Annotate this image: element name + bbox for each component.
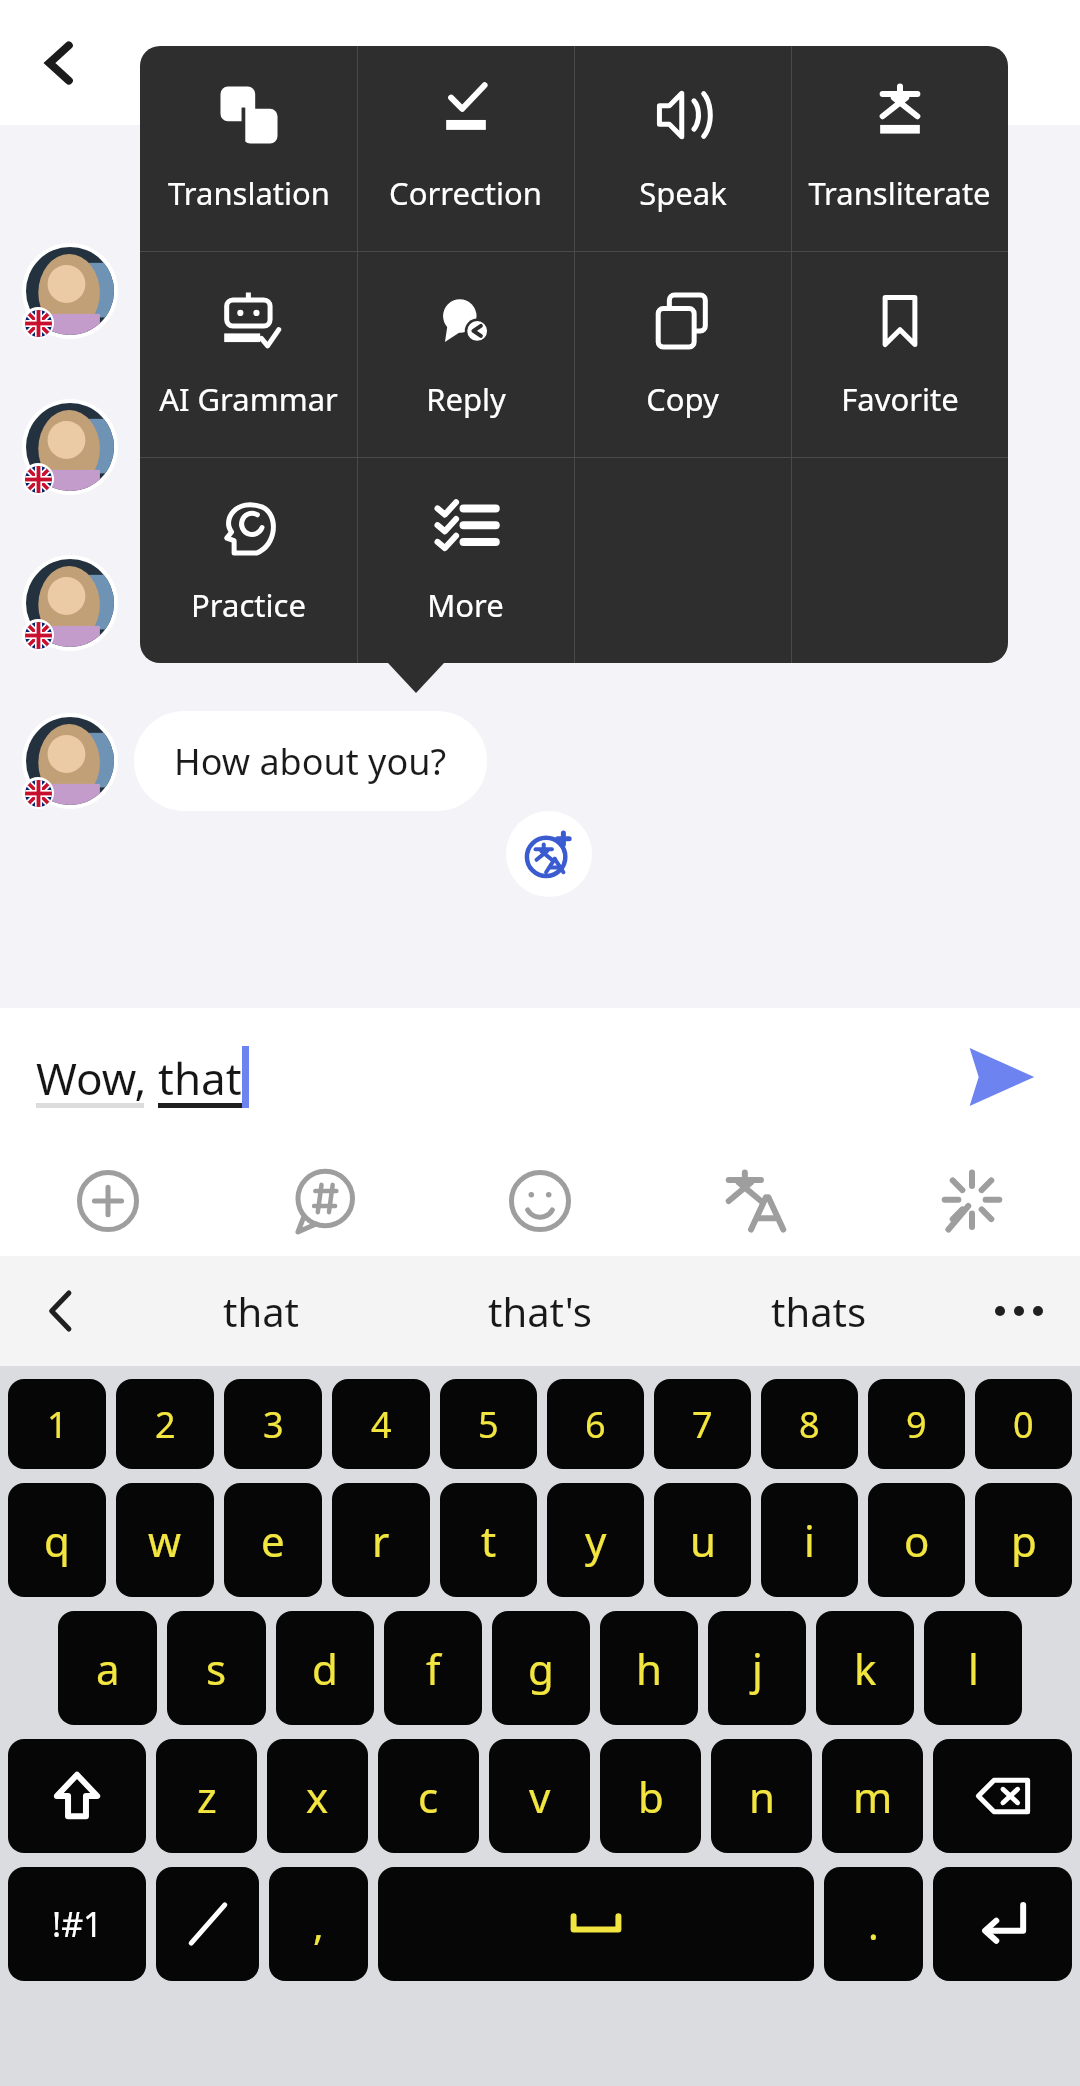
button[interactable]: Reply xyxy=(357,252,574,457)
staticText: 6 xyxy=(585,1400,606,1449)
button[interactable]: Topics xyxy=(216,1146,432,1256)
button[interactable]: Space xyxy=(378,1867,814,1981)
button[interactable]: 3 xyxy=(224,1379,322,1469)
staticText: g xyxy=(528,1640,554,1697)
button[interactable]: 7 xyxy=(654,1379,751,1469)
button[interactable]: r xyxy=(332,1483,430,1597)
button[interactable]: g xyxy=(492,1611,590,1725)
button[interactable]: d xyxy=(276,1611,374,1725)
button[interactable]: z xyxy=(156,1739,257,1853)
button[interactable]: Send xyxy=(920,1008,1080,1146)
staticText: 4 xyxy=(371,1400,392,1449)
staticText: How about you? xyxy=(174,737,447,786)
staticText: k xyxy=(854,1640,877,1697)
button[interactable]: . xyxy=(824,1867,923,1981)
staticText: b xyxy=(638,1768,664,1825)
button[interactable]: c xyxy=(378,1739,479,1853)
button[interactable]: 4 xyxy=(332,1379,430,1469)
button[interactable]: p xyxy=(975,1483,1072,1597)
staticText: o xyxy=(904,1512,930,1569)
button[interactable]: Enter xyxy=(933,1867,1072,1981)
staticText: Practice xyxy=(191,584,306,626)
button[interactable]: m xyxy=(822,1739,923,1853)
button[interactable]: Translation xyxy=(140,46,357,251)
button[interactable]: Shift xyxy=(8,1739,146,1853)
button[interactable]: AI Grammar xyxy=(140,252,357,457)
button[interactable]: a xyxy=(58,1611,157,1725)
button[interactable]: Translate xyxy=(648,1146,864,1256)
button[interactable]: Speak xyxy=(574,46,791,251)
button[interactable]: !#1 xyxy=(8,1867,146,1981)
button[interactable]: 9 xyxy=(868,1379,965,1469)
button[interactable]: , xyxy=(269,1867,368,1981)
button[interactable]: 8 xyxy=(761,1379,858,1469)
button[interactable]: b xyxy=(600,1739,701,1853)
button[interactable]: Previous suggestions xyxy=(0,1256,122,1366)
staticText: 0 xyxy=(1013,1400,1034,1449)
staticText: x xyxy=(306,1768,329,1825)
button[interactable]: 2 xyxy=(116,1379,214,1469)
staticText: Translation xyxy=(168,172,330,214)
staticText: q xyxy=(44,1512,70,1569)
button[interactable]: i xyxy=(761,1483,858,1597)
button[interactable]: e xyxy=(224,1483,322,1597)
staticText: z xyxy=(197,1768,217,1825)
button[interactable]: w xyxy=(116,1483,214,1597)
button[interactable]: x xyxy=(267,1739,368,1853)
button[interactable]: k xyxy=(816,1611,914,1725)
staticText: AI Grammar xyxy=(159,378,338,420)
button[interactable]: f xyxy=(384,1611,482,1725)
button[interactable]: that xyxy=(122,1256,400,1366)
button[interactable]: How about you? xyxy=(134,711,487,811)
staticText: 8 xyxy=(799,1400,820,1449)
button[interactable]: Back xyxy=(24,27,96,99)
button[interactable]: Transliterate xyxy=(791,46,1008,251)
button[interactable]: u xyxy=(654,1483,751,1597)
staticText: d xyxy=(312,1640,338,1697)
staticText: 3 xyxy=(263,1400,284,1449)
button[interactable]: y xyxy=(547,1483,644,1597)
button[interactable]: Correction xyxy=(357,46,574,251)
button[interactable]: v xyxy=(489,1739,590,1853)
staticText: that xyxy=(223,1284,300,1338)
button[interactable]: o xyxy=(868,1483,965,1597)
button[interactable]: More xyxy=(357,458,574,663)
button[interactable]: q xyxy=(8,1483,106,1597)
button[interactable]: l xyxy=(924,1611,1022,1725)
button[interactable]: More suggestions xyxy=(958,1256,1080,1366)
button[interactable]: Emoji xyxy=(432,1146,648,1256)
button[interactable]: thats xyxy=(679,1256,958,1366)
staticText: Copy xyxy=(646,378,719,420)
button[interactable]: n xyxy=(711,1739,812,1853)
button[interactable]: Copy xyxy=(574,252,791,457)
staticText: r xyxy=(372,1512,390,1569)
button[interactable]: 0 xyxy=(975,1379,1072,1469)
button[interactable]: Backspace xyxy=(933,1739,1072,1853)
staticText: w xyxy=(148,1512,182,1569)
button[interactable]: 1 xyxy=(8,1379,106,1469)
button[interactable]: Effects xyxy=(864,1146,1080,1256)
staticText: thats xyxy=(771,1284,867,1338)
staticText: s xyxy=(206,1640,227,1697)
staticText: t xyxy=(481,1512,497,1569)
staticText: 1 xyxy=(47,1400,68,1449)
button[interactable]: 5 xyxy=(440,1379,537,1469)
staticText: a xyxy=(96,1640,120,1697)
button[interactable]: j xyxy=(708,1611,806,1725)
button[interactable]: Favorite xyxy=(791,252,1008,457)
button[interactable]: Add xyxy=(0,1146,216,1256)
button[interactable]: h xyxy=(600,1611,698,1725)
staticText: Transliterate xyxy=(808,172,991,214)
button[interactable]: 6 xyxy=(547,1379,644,1469)
staticText: 7 xyxy=(692,1400,713,1449)
button[interactable]: Practice xyxy=(140,458,357,663)
button[interactable]: Language xyxy=(156,1867,259,1981)
button[interactable]: that's xyxy=(400,1256,679,1366)
staticText: More xyxy=(427,584,504,626)
button[interactable]: s xyxy=(167,1611,266,1725)
button[interactable]: t xyxy=(440,1483,537,1597)
staticText: Speak xyxy=(639,172,727,214)
staticText: Reply xyxy=(426,378,506,420)
button[interactable]: Translate message xyxy=(506,811,592,897)
staticText: , xyxy=(313,1897,324,1951)
